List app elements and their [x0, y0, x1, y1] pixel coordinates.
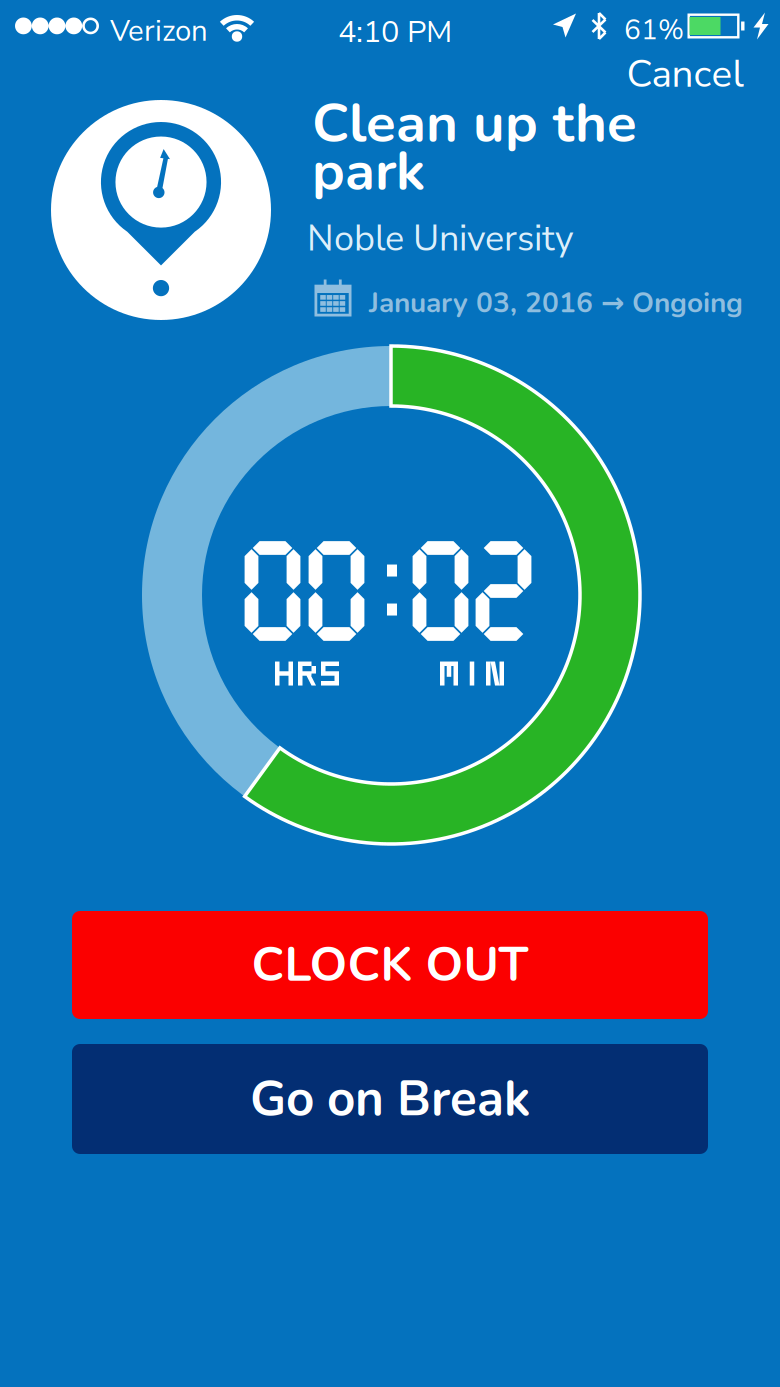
staticText: park [312, 134, 425, 209]
button[interactable]: Go on Break [72, 1044, 708, 1154]
staticText: 61% [624, 11, 684, 49]
button[interactable]: Cancel [609, 46, 761, 102]
staticText: Verizon [110, 11, 208, 51]
staticText: Cancel [626, 48, 743, 100]
button[interactable]: CLOCK OUT [72, 911, 708, 1019]
staticText: 4:10 PM [338, 11, 452, 53]
staticText: Noble University [307, 214, 574, 263]
staticText: Clean up the [312, 86, 637, 161]
staticText: Go on Break [250, 1065, 530, 1133]
staticText: January 03, 2016 → Ongoing [369, 284, 743, 322]
staticText: CLOCK OUT [251, 932, 528, 998]
